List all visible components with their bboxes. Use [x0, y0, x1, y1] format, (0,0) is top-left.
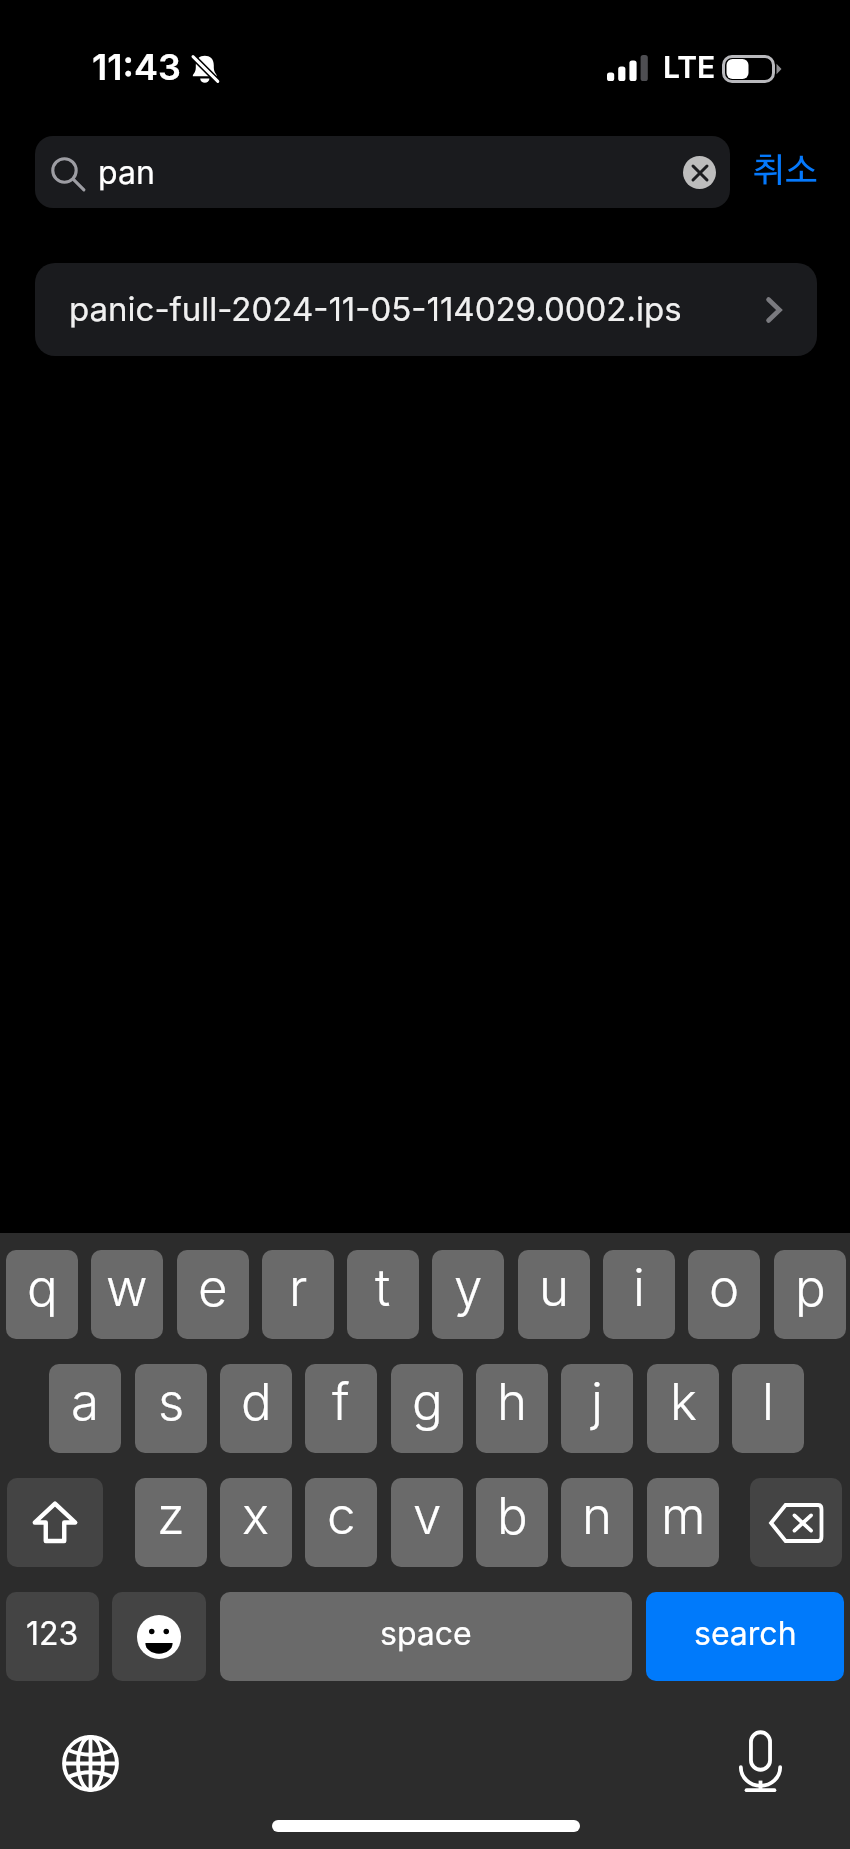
staticText: i	[633, 1257, 645, 1319]
staticText: a	[71, 1371, 100, 1433]
button[interactable]: v	[391, 1478, 463, 1567]
staticText: o	[709, 1257, 740, 1319]
button[interactable]: s	[135, 1364, 207, 1453]
staticText: t	[375, 1257, 391, 1319]
button[interactable]: k	[647, 1364, 719, 1453]
button[interactable]: b	[476, 1478, 548, 1567]
button[interactable]: c	[305, 1478, 377, 1567]
staticText: f	[332, 1371, 350, 1433]
staticText: z	[157, 1485, 185, 1547]
button[interactable]: 123	[6, 1592, 99, 1681]
button[interactable]: i	[603, 1250, 675, 1339]
staticText: space	[380, 1614, 472, 1653]
button[interactable]: y	[432, 1250, 504, 1339]
button[interactable]: 취소	[744, 136, 826, 208]
button[interactable]: m	[647, 1478, 719, 1567]
button[interactable]: z	[135, 1478, 207, 1567]
button[interactable]: f	[305, 1364, 377, 1453]
button[interactable]: Shift	[7, 1478, 103, 1567]
staticText: r	[289, 1257, 308, 1319]
button[interactable]: Clear text	[683, 156, 716, 189]
button[interactable]: x	[220, 1478, 292, 1567]
button[interactable]: panic-full-2024-11-05-114029.0002.ips	[35, 263, 817, 356]
staticText: m	[661, 1485, 706, 1547]
staticText: h	[497, 1371, 528, 1433]
button[interactable]: p	[774, 1250, 846, 1339]
staticText: pan	[98, 153, 155, 192]
staticText: j	[591, 1371, 603, 1433]
staticText: p	[795, 1257, 826, 1319]
button[interactable]: r	[262, 1250, 334, 1339]
button[interactable]: Change keyboard	[62, 1735, 119, 1792]
staticText: LTE	[663, 49, 716, 85]
staticText: e	[198, 1257, 228, 1319]
staticText: u	[539, 1257, 570, 1319]
button[interactable]: a	[49, 1364, 121, 1453]
staticText: 취소	[752, 155, 819, 189]
button[interactable]: n	[561, 1478, 633, 1567]
button[interactable]: q	[6, 1250, 78, 1339]
button[interactable]: u	[518, 1250, 590, 1339]
staticText: w	[106, 1257, 148, 1319]
button[interactable]: g	[391, 1364, 463, 1453]
staticText: 123	[26, 1614, 79, 1653]
staticText: k	[670, 1371, 697, 1433]
button[interactable]: Backspace	[750, 1478, 842, 1567]
staticText: v	[413, 1485, 442, 1547]
button[interactable]: o	[688, 1250, 760, 1339]
staticText: x	[242, 1485, 270, 1547]
button[interactable]: j	[561, 1364, 633, 1453]
staticText: b	[497, 1485, 528, 1547]
button[interactable]: d	[220, 1364, 292, 1453]
button[interactable]: t	[347, 1250, 419, 1339]
button[interactable]: w	[91, 1250, 163, 1339]
staticText: 11:43	[92, 45, 181, 89]
button[interactable]: e	[177, 1250, 249, 1339]
button[interactable]: h	[476, 1364, 548, 1453]
button[interactable]: search	[646, 1592, 844, 1681]
button[interactable]: l	[732, 1364, 804, 1453]
button[interactable]: pan	[35, 136, 730, 208]
button[interactable]: Emoji	[112, 1592, 206, 1681]
staticText: c	[327, 1485, 356, 1547]
staticText: q	[27, 1257, 58, 1319]
staticText: s	[158, 1371, 185, 1433]
staticText: l	[762, 1371, 774, 1433]
staticText: n	[582, 1485, 613, 1547]
staticText: g	[412, 1371, 443, 1433]
button[interactable]: space	[220, 1592, 632, 1681]
staticText: y	[454, 1257, 483, 1319]
staticText: d	[241, 1371, 272, 1433]
staticText: search	[694, 1614, 797, 1653]
button[interactable]: Dictate	[732, 1731, 789, 1793]
staticText: panic-full-2024-11-05-114029.0002.ips	[69, 289, 682, 329]
